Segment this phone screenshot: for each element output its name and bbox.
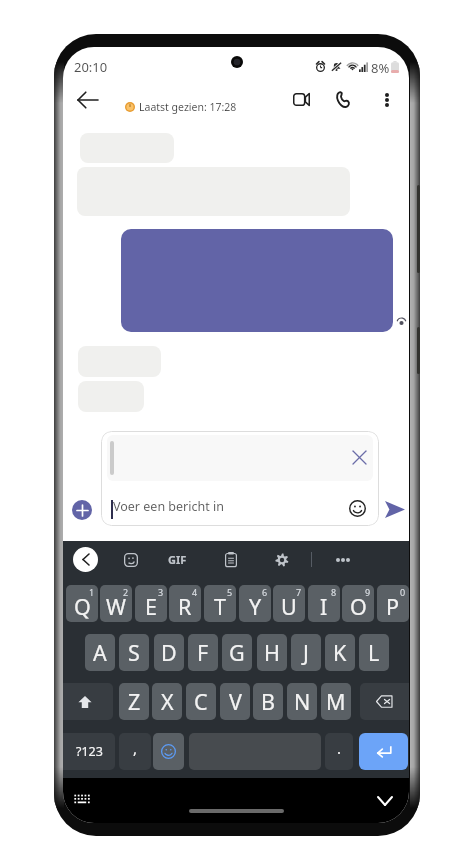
- staticText: B: [261, 687, 275, 716]
- button[interactable]: N: [287, 683, 317, 720]
- button[interactable]: K: [325, 634, 355, 671]
- staticText: M: [326, 687, 346, 716]
- staticText: 0: [400, 586, 406, 598]
- button[interactable]: S: [119, 634, 149, 671]
- staticText: C: [194, 687, 208, 716]
- staticText: X: [161, 687, 174, 716]
- staticText: S: [128, 638, 140, 667]
- button[interactable]: [121, 229, 393, 332]
- button[interactable]: More options: [372, 85, 402, 115]
- button[interactable]: V: [220, 683, 250, 720]
- staticText: ?123: [76, 743, 103, 760]
- staticText: H: [264, 638, 280, 667]
- staticText: U: [281, 592, 297, 621]
- button[interactable]: Shift: [63, 683, 113, 720]
- button[interactable]: A: [85, 634, 115, 671]
- staticText: O: [350, 592, 367, 621]
- button[interactable]: Add attachment: [72, 500, 92, 520]
- staticText: Voer een bericht in: [113, 498, 224, 515]
- staticText: .: [337, 738, 342, 758]
- button[interactable]: More: [332, 549, 353, 570]
- button[interactable]: Q: [66, 585, 98, 622]
- button[interactable]: Call: [328, 84, 358, 114]
- button[interactable]: M: [321, 683, 351, 720]
- staticText: N: [294, 687, 311, 716]
- staticText: F: [197, 638, 209, 667]
- button[interactable]: B: [253, 683, 283, 720]
- button[interactable]: Enter: [359, 733, 408, 770]
- button[interactable]: H: [257, 634, 287, 671]
- staticText: Laatst gezien: 17:28: [139, 100, 237, 114]
- staticText: T: [214, 592, 226, 621]
- button[interactable]: Laatst gezien: 17:28: [125, 100, 237, 114]
- button[interactable]: R: [169, 585, 201, 622]
- staticText: 8%: [371, 59, 390, 74]
- button[interactable]: Backspace: [360, 683, 409, 720]
- button[interactable]: Y: [239, 585, 271, 622]
- staticText: ,: [133, 738, 138, 758]
- staticText: 8: [331, 586, 337, 598]
- button[interactable]: Close reply: [347, 445, 371, 469]
- button[interactable]: Period: [325, 733, 353, 770]
- button[interactable]: Send: [381, 495, 409, 523]
- staticText: 3: [158, 586, 164, 598]
- button[interactable]: D: [154, 634, 184, 671]
- staticText: K: [333, 638, 347, 667]
- staticText: W: [106, 592, 126, 621]
- button[interactable]: L: [359, 634, 389, 671]
- button[interactable]: Clipboard: [220, 549, 241, 570]
- staticText: A: [93, 638, 107, 667]
- staticText: L: [368, 638, 380, 667]
- staticText: E: [145, 592, 157, 621]
- staticText: GIF: [168, 552, 187, 567]
- button[interactable]: Settings: [271, 549, 292, 570]
- staticText: I: [320, 592, 328, 621]
- staticText: Q: [74, 592, 91, 621]
- staticText: 9: [365, 586, 371, 598]
- staticText: G: [229, 638, 245, 667]
- staticText: R: [178, 592, 192, 621]
- button[interactable]: Symbols: [63, 733, 115, 770]
- staticText: Z: [128, 687, 141, 716]
- button[interactable]: Close toolbar: [73, 547, 98, 572]
- button[interactable]: J: [291, 634, 321, 671]
- staticText: 6: [262, 586, 268, 598]
- staticText: V: [229, 687, 242, 716]
- button[interactable]: E: [135, 585, 167, 622]
- button[interactable]: Video call: [286, 84, 316, 114]
- button[interactable]: GIF: [168, 552, 187, 567]
- button[interactable]: O: [342, 585, 374, 622]
- button[interactable]: Hide keyboard: [373, 792, 397, 810]
- button[interactable]: C: [186, 683, 216, 720]
- button[interactable]: P: [377, 585, 409, 622]
- staticText: D: [161, 638, 177, 667]
- staticText: 7: [296, 586, 302, 598]
- button[interactable]: T: [204, 585, 236, 622]
- button[interactable]: Back: [72, 84, 104, 116]
- staticText: 1: [89, 586, 95, 598]
- staticText: Y: [249, 592, 262, 621]
- button[interactable]: Show keyboard: [74, 794, 91, 805]
- staticText: 5: [227, 586, 233, 598]
- button[interactable]: Emoji: [345, 496, 369, 520]
- button[interactable]: W: [100, 585, 132, 622]
- button[interactable]: F: [188, 634, 218, 671]
- staticText: P: [386, 592, 400, 621]
- button[interactable]: Stickers: [120, 549, 141, 570]
- staticText: 20:10: [74, 58, 108, 76]
- button[interactable]: Emoji: [153, 733, 184, 770]
- staticText: J: [303, 638, 309, 667]
- staticText: 2: [123, 586, 129, 598]
- button[interactable]: G: [222, 634, 252, 671]
- button[interactable]: Z: [119, 683, 149, 720]
- button[interactable]: X: [152, 683, 182, 720]
- button[interactable]: Comma: [119, 733, 151, 770]
- button[interactable]: U: [273, 585, 305, 622]
- staticText: 4: [192, 586, 198, 598]
- button[interactable]: I: [308, 585, 340, 622]
